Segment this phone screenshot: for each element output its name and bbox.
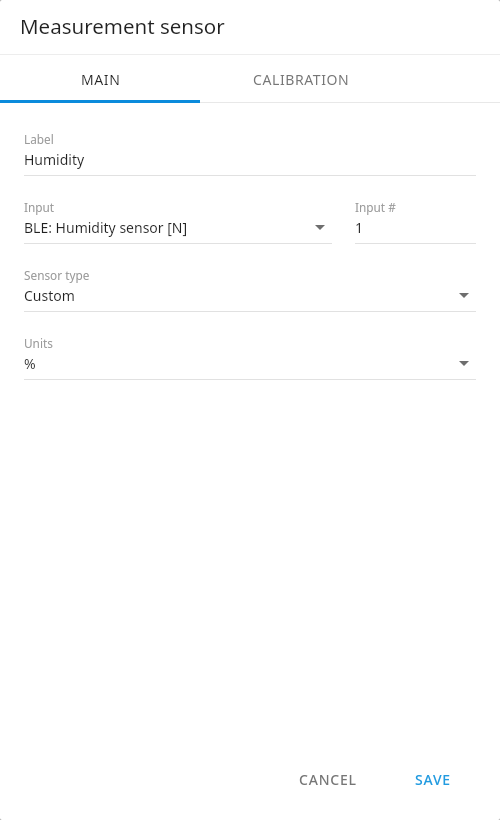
- staticText: %: [24, 354, 36, 373]
- staticText: Sensor type: [24, 267, 90, 283]
- staticText: Label: [24, 131, 54, 147]
- button[interactable]: Input #: [355, 199, 476, 244]
- staticText: Input: [24, 199, 55, 215]
- staticText: 1: [355, 218, 364, 237]
- button[interactable]: Label: [24, 131, 476, 176]
- other: Open Input list: [315, 225, 325, 230]
- button[interactable]: SAVE: [403, 762, 463, 797]
- button[interactable]: Input: [24, 199, 332, 244]
- staticText: CANCEL: [299, 770, 357, 789]
- button[interactable]: CALIBRATION: [200, 55, 400, 103]
- button[interactable]: Units: [24, 335, 476, 380]
- button[interactable]: CANCEL: [287, 762, 369, 797]
- staticText: SAVE: [415, 770, 451, 789]
- staticText: Humidity: [24, 150, 85, 169]
- other: Open Units list: [459, 361, 469, 366]
- staticText: MAIN: [81, 70, 121, 89]
- button[interactable]: Sensor type: [24, 267, 476, 312]
- staticText: Units: [24, 335, 53, 351]
- button[interactable]: MAIN: [0, 55, 200, 103]
- staticText: Measurement sensor: [20, 12, 225, 40]
- staticText: Input #: [355, 199, 396, 215]
- staticText: BLE: Humidity sensor [N]: [24, 218, 188, 237]
- staticText: CALIBRATION: [253, 70, 350, 89]
- other: Open Sensor type list: [459, 293, 469, 298]
- staticText: Custom: [24, 286, 75, 305]
